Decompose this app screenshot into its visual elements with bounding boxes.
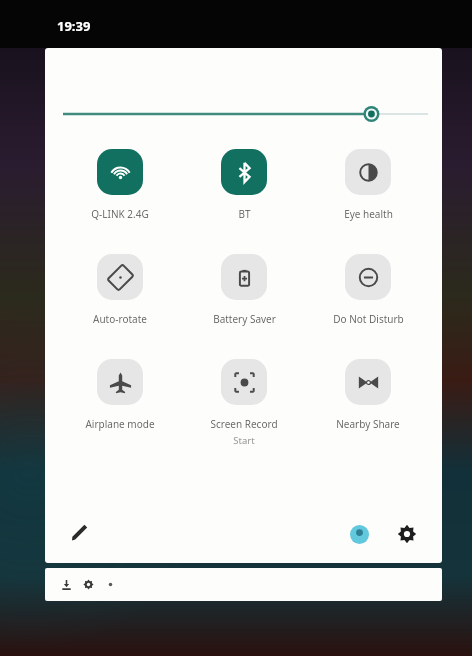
button[interactable]: Airplane mode <box>57 359 182 431</box>
staticText: BT <box>238 207 251 221</box>
button[interactable]: Do Not Disturb <box>306 254 430 326</box>
button[interactable]: Settings <box>390 517 424 551</box>
button[interactable]: Edit tiles <box>63 517 97 551</box>
staticText: 19:39 <box>57 17 91 35</box>
staticText: Battery Saver <box>213 312 276 326</box>
staticText: Do Not Disturb <box>333 312 404 326</box>
button[interactable] <box>45 568 442 601</box>
button[interactable]: Screen Record <box>182 359 306 447</box>
staticText: Start <box>233 434 255 447</box>
staticText: Screen Record <box>210 417 278 431</box>
button[interactable]: BT <box>182 149 306 221</box>
staticText: Airplane mode <box>85 417 155 431</box>
button[interactable]: User account <box>342 517 376 551</box>
button[interactable]: Q-LINK 2.4G <box>57 149 182 221</box>
staticText: Q-LINK 2.4G <box>91 207 149 221</box>
button[interactable]: Auto-rotate <box>57 254 182 326</box>
button[interactable]: Battery Saver <box>182 254 306 326</box>
staticText: Auto-rotate <box>93 312 147 326</box>
button[interactable]: Nearby Share <box>306 359 430 431</box>
staticText: Nearby Share <box>336 417 400 431</box>
button[interactable]: Eye health <box>306 149 430 221</box>
staticText: Eye health <box>344 207 393 221</box>
